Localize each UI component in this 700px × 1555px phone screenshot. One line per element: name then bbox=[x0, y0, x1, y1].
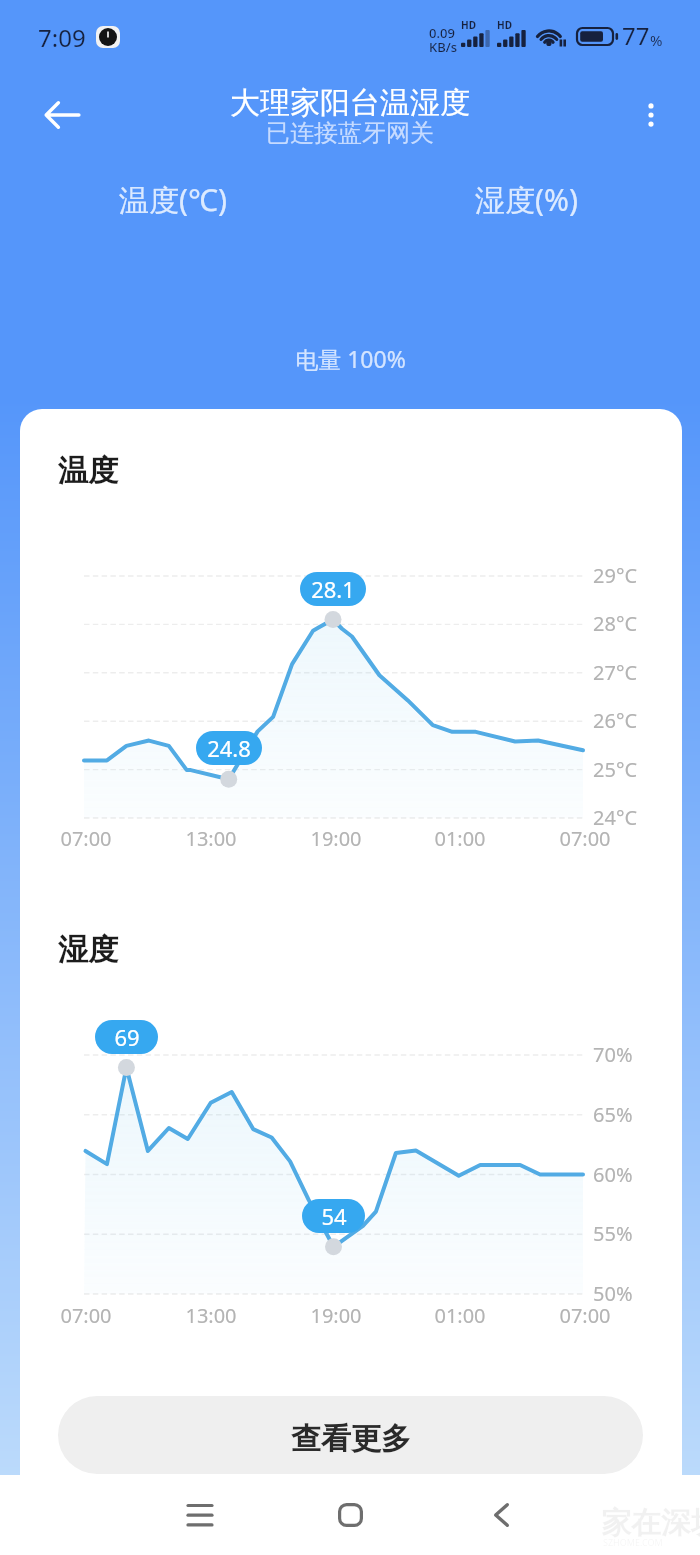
staticText: 19:00 bbox=[310, 825, 362, 852]
staticText: 07:00 bbox=[559, 825, 611, 852]
button[interactable]: Recents bbox=[162, 1477, 238, 1553]
button[interactable]: Back bbox=[34, 87, 90, 143]
staticText: 07:00 bbox=[60, 825, 112, 852]
staticText: 50% bbox=[593, 1280, 633, 1307]
staticText: 13:00 bbox=[185, 825, 237, 852]
staticText: 大理家阳台温湿度 bbox=[230, 84, 470, 122]
staticText: % bbox=[650, 30, 663, 50]
staticText: 已连接蓝牙网关 bbox=[266, 118, 434, 148]
staticText: 27°C bbox=[593, 659, 638, 686]
button[interactable]: Back bbox=[463, 1477, 539, 1553]
staticText: 07:00 bbox=[559, 1302, 611, 1329]
staticText: 湿度 bbox=[58, 931, 118, 969]
button[interactable]: 54 bbox=[302, 1199, 365, 1233]
staticText: 77 bbox=[622, 19, 650, 52]
button[interactable]: 24.8 bbox=[196, 731, 262, 765]
staticText: 65% bbox=[593, 1101, 633, 1128]
staticText: 28.1 bbox=[311, 574, 355, 604]
button[interactable]: 28.1 bbox=[300, 572, 366, 606]
staticText: 0.09 bbox=[429, 24, 455, 42]
staticText: KB/s bbox=[429, 38, 458, 56]
staticText: 28°C bbox=[593, 610, 638, 637]
staticText: 24°C bbox=[593, 804, 638, 831]
staticText: 查看更多 bbox=[291, 1420, 411, 1458]
staticText: 25°C bbox=[593, 756, 638, 783]
staticText: 温度 bbox=[58, 452, 118, 490]
staticText: 01:00 bbox=[434, 825, 486, 852]
staticText: 家在深圳 bbox=[601, 1504, 700, 1542]
staticText: 26°C bbox=[593, 707, 638, 734]
staticText: 电量 100% bbox=[295, 343, 406, 374]
staticText: 54 bbox=[321, 1201, 347, 1231]
staticText: 29°C bbox=[593, 562, 638, 589]
staticText: 7:09 bbox=[38, 21, 86, 54]
button[interactable]: 查看更多 bbox=[58, 1396, 643, 1474]
staticText: HD bbox=[497, 18, 512, 32]
button[interactable]: Home bbox=[312, 1477, 388, 1553]
staticText: 24.8 bbox=[207, 733, 251, 763]
staticText: 55% bbox=[593, 1220, 633, 1247]
staticText: 13:00 bbox=[185, 1302, 237, 1329]
staticText: 温度(℃) bbox=[119, 179, 227, 220]
staticText: 19:00 bbox=[310, 1302, 362, 1329]
staticText: 湿度(%) bbox=[475, 179, 578, 220]
staticText: 01:00 bbox=[434, 1302, 486, 1329]
button[interactable]: 69 bbox=[95, 1020, 158, 1054]
staticText: 60% bbox=[593, 1161, 633, 1188]
staticText: HD bbox=[461, 18, 476, 32]
staticText: 07:00 bbox=[60, 1302, 112, 1329]
staticText: 70% bbox=[593, 1041, 633, 1068]
button[interactable]: More options bbox=[627, 91, 675, 139]
staticText: 69 bbox=[114, 1022, 140, 1052]
